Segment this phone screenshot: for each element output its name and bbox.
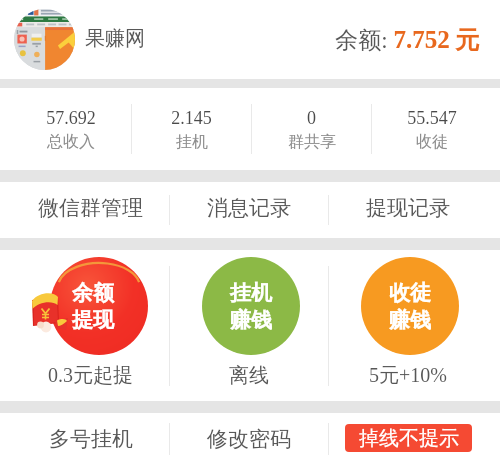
staticText: 0 bbox=[307, 108, 316, 128]
staticText: 挂机 bbox=[176, 132, 208, 152]
button[interactable]: 提现记录 bbox=[329, 182, 487, 238]
button[interactable]: 57.692 bbox=[11, 88, 131, 170]
button[interactable]: 余额 提现 bbox=[12, 250, 169, 401]
staticText: 提现记录 bbox=[366, 195, 450, 221]
button[interactable]: 微信群管理 bbox=[12, 182, 169, 238]
staticText: 55.547 bbox=[407, 108, 457, 128]
button[interactable]: 55.547 bbox=[372, 88, 491, 170]
staticText: 消息记录 bbox=[207, 195, 291, 221]
staticText: 元 bbox=[455, 25, 479, 55]
button[interactable]: 0 bbox=[252, 88, 371, 170]
staticText: 群共享 bbox=[288, 132, 336, 152]
staticText: 余额 提现 bbox=[72, 280, 114, 333]
staticText: 掉线不提示 bbox=[359, 426, 459, 451]
staticText: 7.752 bbox=[393, 26, 450, 54]
button[interactable]: 多号挂机 bbox=[12, 413, 169, 464]
staticText: 0.3元起提 bbox=[48, 363, 133, 388]
button[interactable]: 2.145 bbox=[132, 88, 251, 170]
staticText: 收徒 bbox=[416, 132, 448, 152]
button[interactable]: 挂机 赚钱 bbox=[170, 250, 328, 401]
staticText: 总收入 bbox=[47, 132, 95, 152]
button[interactable]: 修改密码 bbox=[170, 413, 328, 464]
staticText: 余额: bbox=[335, 26, 388, 55]
button[interactable]: 掉线不提示 bbox=[345, 424, 472, 452]
staticText: 离线 bbox=[229, 363, 269, 388]
staticText: 多号挂机 bbox=[49, 426, 133, 452]
staticText: 微信群管理 bbox=[38, 195, 143, 221]
staticText: 修改密码 bbox=[207, 426, 291, 452]
staticText: 收徒 赚钱 bbox=[389, 280, 431, 333]
staticText: 果赚网 bbox=[85, 26, 145, 51]
button[interactable]: Profile avatar bbox=[14, 9, 75, 70]
staticText: 5元+10% bbox=[369, 363, 447, 388]
button[interactable]: 收徒 赚钱 bbox=[329, 250, 487, 401]
staticText: 挂机 赚钱 bbox=[230, 280, 272, 333]
staticText: 2.145 bbox=[171, 108, 212, 128]
staticText: 57.692 bbox=[46, 108, 96, 128]
button[interactable]: 消息记录 bbox=[170, 182, 328, 238]
